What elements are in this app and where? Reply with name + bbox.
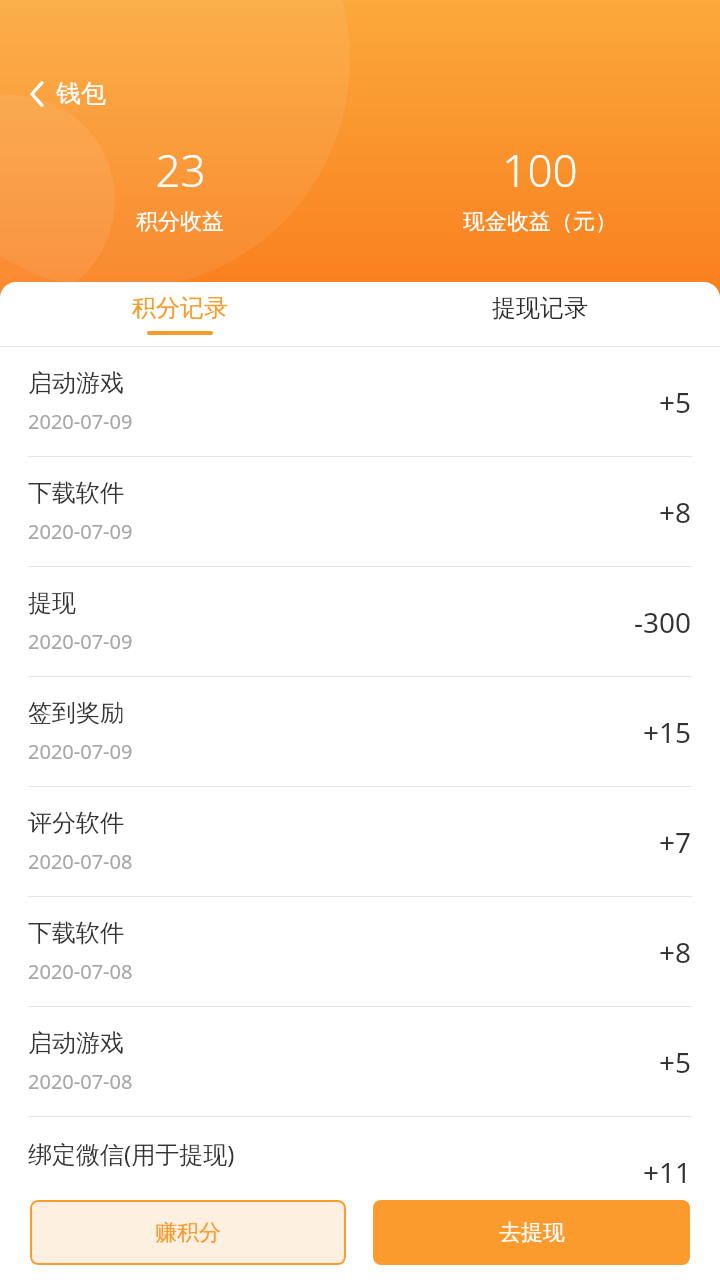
button[interactable]: 启动游戏 (0, 347, 720, 457)
staticText: +7 (659, 823, 692, 861)
staticText: 2020-07-09 (28, 628, 133, 655)
staticText: +5 (659, 383, 692, 421)
button[interactable]: 赚积分 (30, 1200, 346, 1265)
staticText: 启动游戏 (28, 368, 124, 398)
staticText: 签到奖励 (28, 698, 124, 728)
staticText: 2020-07-09 (28, 408, 133, 435)
staticText: 提现 (28, 588, 76, 618)
staticText: +11 (643, 1153, 692, 1191)
button[interactable]: 下载软件 (0, 457, 720, 567)
staticText: 2020-07-08 (28, 958, 133, 985)
button[interactable]: 提现记录 (360, 282, 720, 346)
staticText: 绑定微信(用于提现) (28, 1137, 235, 1170)
button[interactable]: 100 (360, 140, 720, 236)
button[interactable]: 23 (0, 140, 360, 236)
staticText: 钱包 (56, 78, 106, 109)
button[interactable]: 积分记录 (0, 282, 360, 346)
staticText: -300 (634, 603, 692, 641)
staticText: 提现记录 (492, 293, 588, 323)
staticText: 2020-07-09 (28, 738, 133, 765)
staticText: 100 (502, 140, 578, 200)
button[interactable]: 签到奖励 (0, 677, 720, 787)
staticText: 2020-07-08 (28, 1180, 133, 1207)
other: Back (28, 79, 46, 109)
staticText: 启动游戏 (28, 1028, 124, 1058)
button[interactable]: 启动游戏 (0, 1007, 720, 1117)
staticText: 2020-07-08 (28, 848, 133, 875)
staticText: +8 (659, 933, 692, 971)
staticText: 下载软件 (28, 478, 124, 508)
staticText: 2020-07-09 (28, 518, 133, 545)
button[interactable]: 提现 (0, 567, 720, 677)
staticText: 2020-07-08 (28, 1068, 133, 1095)
staticText: 赚积分 (155, 1219, 221, 1247)
staticText: +15 (643, 713, 692, 751)
staticText: +5 (659, 1043, 692, 1081)
staticText: 积分记录 (132, 293, 228, 323)
button[interactable]: 去提现 (373, 1200, 690, 1265)
staticText: +8 (659, 493, 692, 531)
staticText: 积分收益 (136, 208, 224, 236)
staticText: 评分软件 (28, 808, 124, 838)
staticText: 去提现 (499, 1219, 565, 1247)
button[interactable]: 评分软件 (0, 787, 720, 897)
button[interactable]: 下载软件 (0, 897, 720, 1007)
staticText: 23 (155, 140, 206, 200)
button[interactable]: 绑定微信(用于提现) (0, 1117, 720, 1227)
staticText: 下载软件 (28, 918, 124, 948)
button[interactable]: Back (18, 72, 116, 115)
staticText: 现金收益（元） (463, 208, 617, 236)
